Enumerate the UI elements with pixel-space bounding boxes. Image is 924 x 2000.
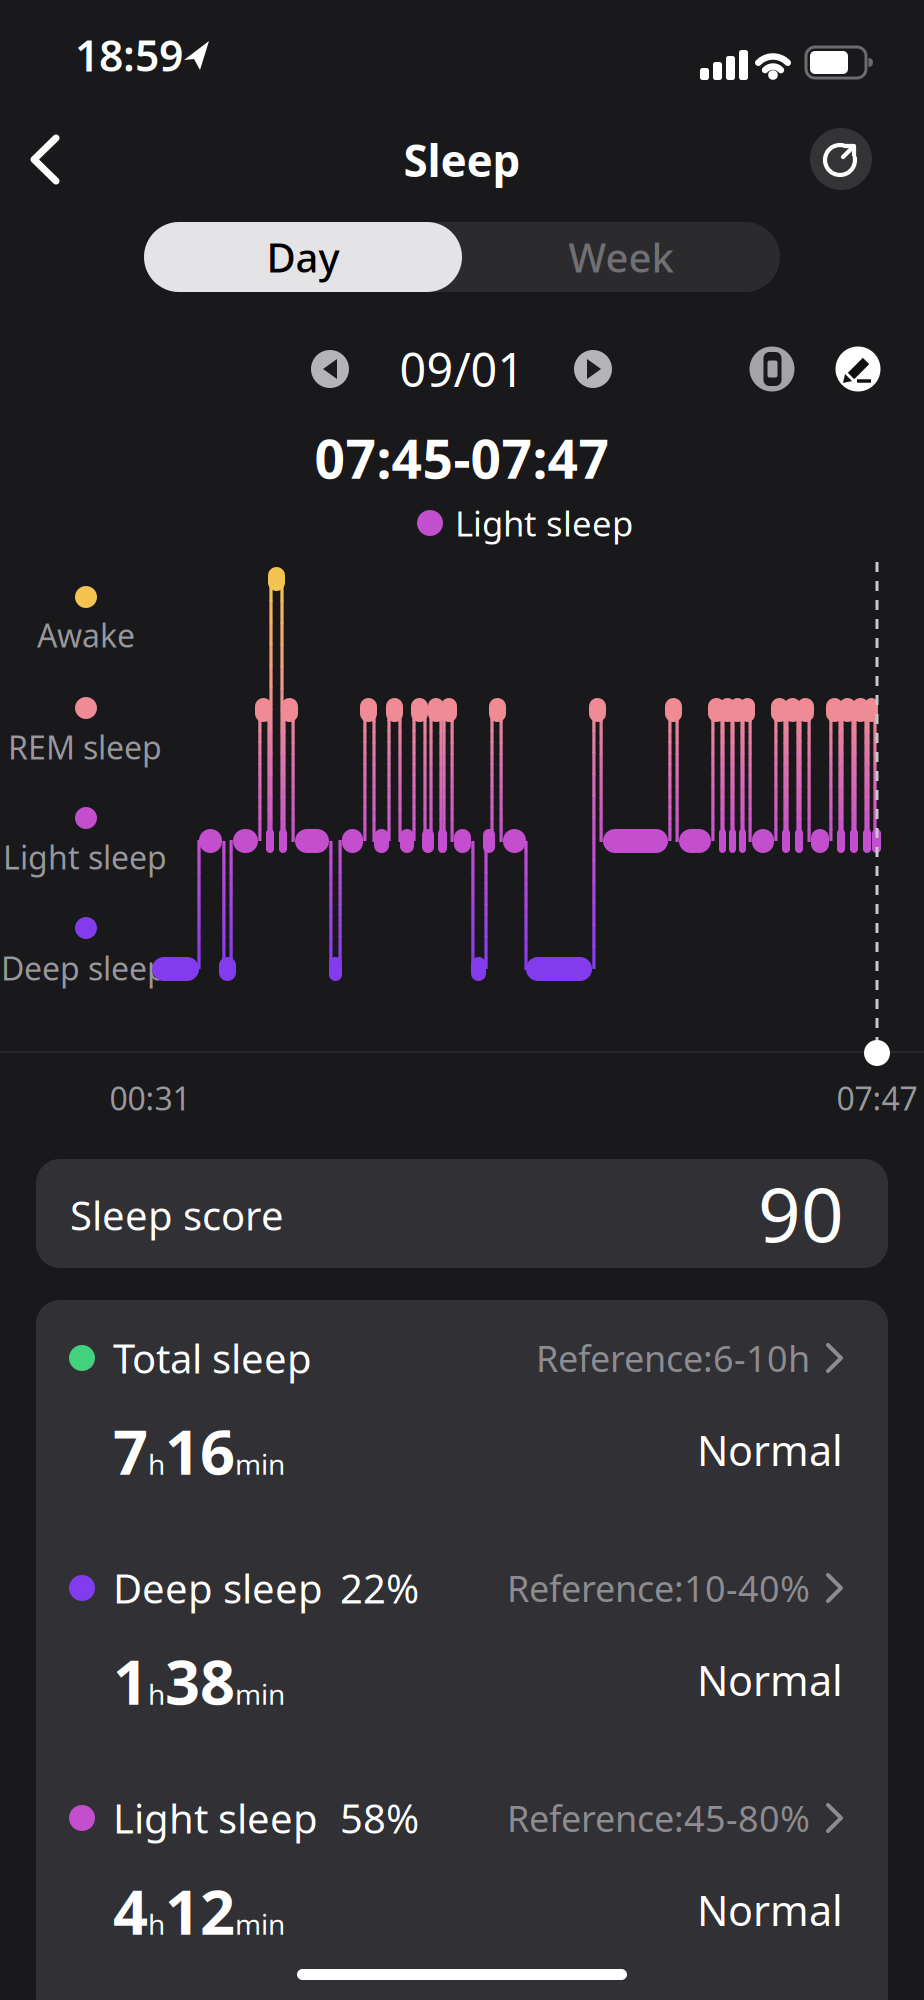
staticText: Sleep bbox=[403, 131, 520, 189]
staticText: 09/01 bbox=[399, 338, 524, 400]
staticText: 22% bbox=[340, 1561, 419, 1614]
staticText: min bbox=[235, 1905, 285, 1942]
staticText: Normal bbox=[697, 1423, 843, 1477]
staticText: h bbox=[148, 1905, 165, 1942]
staticText: 00:31 bbox=[109, 1077, 190, 1119]
staticText: 90 bbox=[758, 1163, 844, 1263]
staticText: Light sleep bbox=[113, 1791, 318, 1844]
staticText: 12 bbox=[165, 1870, 235, 1952]
staticText: Normal bbox=[697, 1883, 843, 1937]
staticText: min bbox=[235, 1675, 285, 1712]
staticText: h bbox=[148, 1675, 165, 1712]
staticText: Light sleep bbox=[3, 836, 167, 878]
staticText: 4 bbox=[113, 1870, 148, 1952]
staticText: REM sleep bbox=[8, 726, 162, 768]
staticText: Deep sleep bbox=[113, 1561, 323, 1614]
staticText: 07:45-07:47 bbox=[314, 423, 609, 493]
staticText: Total sleep bbox=[113, 1331, 312, 1384]
staticText: Sleep score bbox=[70, 1188, 284, 1241]
staticText: 58% bbox=[340, 1791, 419, 1844]
staticText: Reference:10-40% bbox=[507, 1564, 810, 1612]
staticText: 38 bbox=[165, 1640, 235, 1722]
staticText: h bbox=[148, 1445, 165, 1482]
staticText: Light sleep bbox=[455, 500, 633, 546]
staticText: Day bbox=[266, 230, 339, 283]
staticText: 16 bbox=[165, 1410, 235, 1492]
staticText: Deep sleep bbox=[1, 947, 167, 989]
staticText: 1 bbox=[113, 1640, 148, 1722]
staticText: 07:47 bbox=[836, 1077, 917, 1119]
staticText: Reference:45-80% bbox=[507, 1794, 810, 1842]
staticText: 18:59 bbox=[75, 27, 183, 83]
staticText: Reference:6-10h bbox=[536, 1334, 810, 1382]
staticText: 7 bbox=[113, 1410, 148, 1492]
staticText: min bbox=[235, 1445, 285, 1482]
staticText: Awake bbox=[37, 614, 135, 656]
staticText: Week bbox=[568, 230, 673, 283]
staticText: Normal bbox=[697, 1653, 843, 1707]
